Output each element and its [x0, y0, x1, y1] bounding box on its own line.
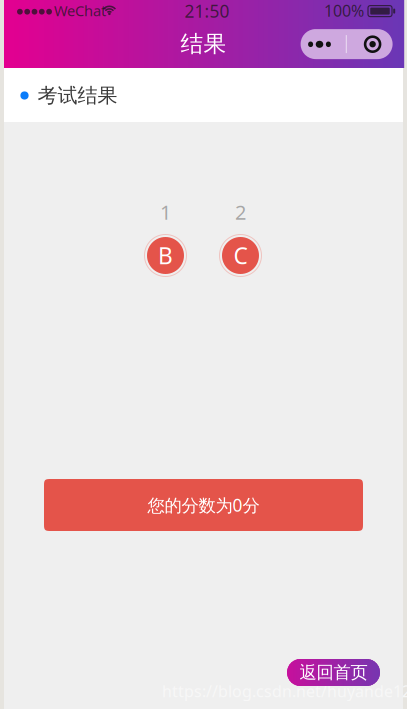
- button[interactable]: 考试结果: [4, 68, 403, 122]
- staticText: https://blog.csdn.net/huyande123: [162, 680, 407, 702]
- staticText: 返回首页: [299, 662, 367, 683]
- staticText: 2: [235, 199, 246, 225]
- staticText: 您的分数为0分: [147, 493, 259, 516]
- staticText: B: [158, 240, 173, 270]
- staticText: 考试结果: [37, 83, 117, 108]
- button[interactable]: 返回首页: [287, 659, 380, 686]
- staticText: 100%: [324, 0, 364, 21]
- button[interactable]: More options: [301, 29, 393, 59]
- staticText: 结果: [180, 30, 226, 58]
- staticText: 1: [160, 199, 171, 225]
- staticText: 21:50: [184, 0, 229, 22]
- staticText: C: [233, 240, 247, 270]
- staticText: WeChat: [54, 1, 106, 20]
